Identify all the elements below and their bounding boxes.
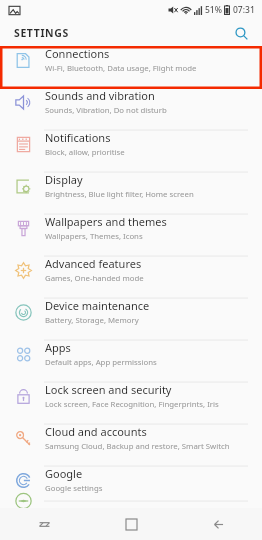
staticText: Google — [45, 466, 83, 481]
button[interactable]: Google — [0, 466, 262, 501]
staticText: Advanced features — [45, 256, 142, 271]
button[interactable]: Advanced features — [0, 256, 262, 298]
staticText: Default apps, App permissions — [45, 357, 157, 368]
staticText: Sounds, Vibration, Do not disturb — [45, 105, 167, 116]
staticText: Block, allow, prioritise — [45, 147, 125, 158]
button[interactable]: Connections — [0, 46, 262, 88]
button[interactable]: Wallpapers and themes — [0, 214, 262, 256]
staticText: Display — [45, 172, 83, 187]
staticText: Samsung Cloud, Backup and restore, Smart… — [45, 441, 230, 452]
staticText: Google settings — [45, 483, 103, 494]
button[interactable]: Home — [88, 508, 175, 540]
staticText: Apps — [45, 340, 71, 355]
staticText: Battery, Storage, Memory — [45, 315, 139, 326]
staticText: Connections — [45, 46, 110, 61]
staticText: Wallpapers and themes — [45, 214, 167, 229]
staticText: Wallpapers, Themes, Icons — [45, 231, 143, 242]
staticText: Brightness, Blue light filter, Home scre… — [45, 189, 194, 200]
staticText: Sounds and vibration — [45, 88, 155, 103]
staticText: Games, One-handed mode — [45, 273, 144, 284]
staticText: SETTINGS — [14, 26, 69, 40]
staticText: Wi-Fi, Bluetooth, Data usage, Flight mod… — [45, 63, 197, 74]
staticText: Lock screen, Face Recognition, Fingerpri… — [45, 399, 219, 410]
button[interactable]: Sounds and vibration — [0, 88, 262, 130]
button[interactable]: Display — [0, 172, 262, 214]
staticText: 51% — [205, 4, 222, 16]
button[interactable]: Cloud and accounts — [0, 424, 262, 466]
staticText: 07:31 — [233, 4, 255, 16]
staticText: Lock screen and security — [45, 382, 172, 397]
staticText: Cloud and accounts — [45, 424, 147, 439]
button[interactable]: Back — [175, 508, 262, 540]
button[interactable]: Search — [230, 22, 252, 44]
button[interactable]: Notifications — [0, 130, 262, 172]
staticText: Notifications — [45, 130, 111, 145]
button[interactable]: Recents — [0, 508, 88, 540]
button[interactable]: Lock screen and security — [0, 382, 262, 424]
staticText: Device maintenance — [45, 298, 150, 313]
button[interactable]: Apps — [0, 340, 262, 382]
button[interactable]: Device maintenance — [0, 298, 262, 340]
